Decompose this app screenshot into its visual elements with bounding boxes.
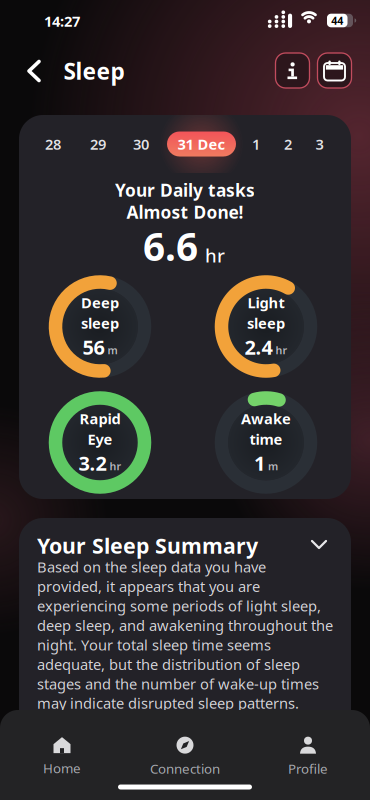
staticText: 44 xyxy=(331,13,343,28)
staticText: time xyxy=(249,429,282,449)
staticText: Based on the sleep data you have xyxy=(37,557,266,577)
staticText: provided, it appears that you are xyxy=(37,577,260,596)
staticText: stages and the number of wake-up times xyxy=(37,674,319,693)
staticText: hr xyxy=(205,243,225,268)
staticText: Profile xyxy=(288,760,328,777)
button[interactable]: 31 Dec xyxy=(167,131,236,156)
button[interactable]: Home xyxy=(43,737,81,777)
button[interactable]: Info xyxy=(275,53,309,88)
staticText: 1 xyxy=(252,134,260,154)
staticText: 3.2 xyxy=(78,450,106,476)
button[interactable]: Calendar xyxy=(317,53,351,88)
button[interactable]: Profile xyxy=(288,737,328,777)
staticText: 3 xyxy=(315,134,323,154)
button[interactable]: Back xyxy=(24,59,43,83)
button[interactable]: 1 xyxy=(252,134,260,154)
staticText: adequate, but the distribution of sleep xyxy=(37,654,300,674)
button[interactable]: 28 xyxy=(45,134,61,154)
staticText: Sleep xyxy=(63,56,124,86)
button[interactable]: 2 xyxy=(284,134,292,154)
staticText: hr xyxy=(275,343,287,357)
staticText: Your Daily tasks xyxy=(115,178,255,201)
staticText: Almost Done! xyxy=(126,200,243,223)
staticText: experiencing some periods of light sleep… xyxy=(37,596,321,615)
staticText: Deep xyxy=(81,293,119,312)
staticText: 30 xyxy=(133,134,149,154)
staticText: sleep xyxy=(247,313,285,333)
button[interactable]: Collapse xyxy=(311,540,327,550)
staticText: 56 xyxy=(82,334,104,360)
staticText: m xyxy=(268,459,278,473)
staticText: Connection xyxy=(150,760,220,777)
staticText: 28 xyxy=(45,134,61,154)
staticText: Awake xyxy=(241,409,291,428)
button[interactable]: 3 xyxy=(315,134,323,154)
staticText: 2.4 xyxy=(244,334,272,360)
button[interactable]: 29 xyxy=(90,134,106,154)
staticText: sleep xyxy=(81,313,119,333)
button[interactable]: Connection xyxy=(150,737,220,777)
staticText: 2 xyxy=(284,134,292,154)
staticText: 1 xyxy=(254,450,265,476)
staticText: Home xyxy=(43,759,81,777)
staticText: 31 Dec xyxy=(177,134,225,154)
staticText: 6.6 xyxy=(143,220,198,272)
staticText: Eye xyxy=(87,429,112,449)
staticText: hr xyxy=(109,459,121,473)
staticText: Your Sleep Summary xyxy=(37,531,258,560)
staticText: night. Your total sleep time seems xyxy=(37,635,271,654)
staticText: 29 xyxy=(90,134,106,154)
staticText: Light xyxy=(247,293,284,312)
staticText: deep sleep, and awakening throughout the xyxy=(37,615,333,635)
staticText: Rapid xyxy=(79,409,120,428)
staticText: m xyxy=(107,343,117,357)
staticText: 14:27 xyxy=(44,11,80,31)
staticText: may indicate disrupted sleep patterns. xyxy=(37,693,299,713)
button[interactable]: 30 xyxy=(133,134,149,154)
